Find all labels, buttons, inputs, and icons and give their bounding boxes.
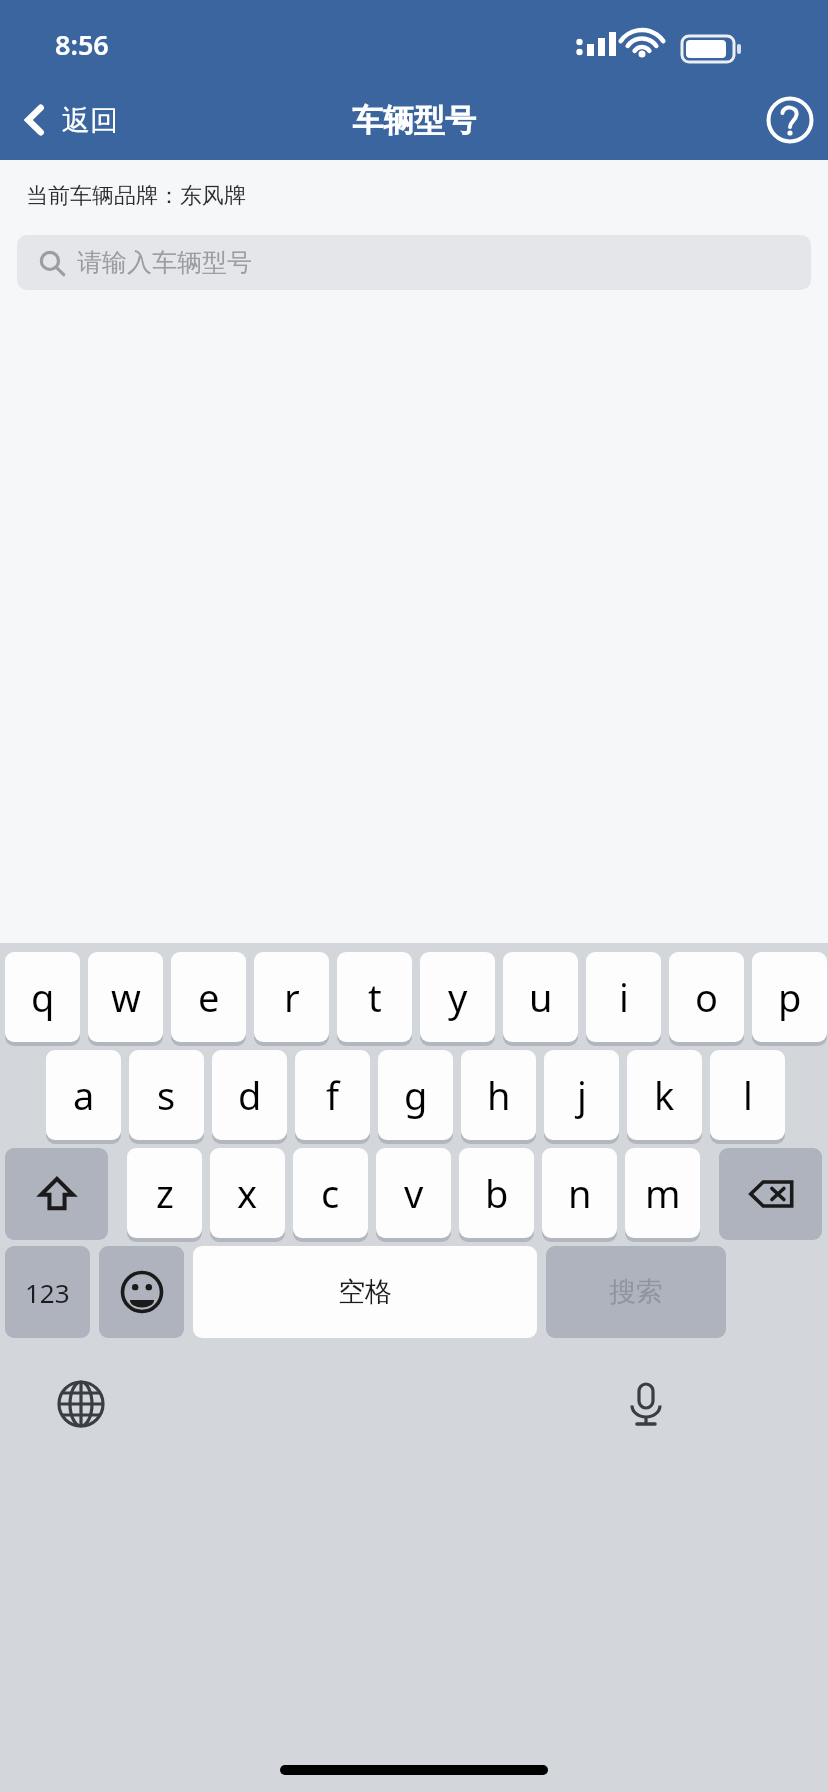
button[interactable]: h [461, 1050, 536, 1142]
button[interactable]: Help [752, 82, 828, 158]
staticText: v [404, 1167, 424, 1219]
staticText: 车辆型号 [0, 101, 828, 140]
staticText: t [368, 971, 382, 1023]
button[interactable]: a [46, 1050, 121, 1142]
staticText: 8:56 [55, 26, 109, 63]
staticText: 返回 [62, 103, 118, 138]
staticText: r [284, 971, 300, 1023]
staticText: z [156, 1167, 174, 1219]
button[interactable]: 空格 [193, 1246, 537, 1338]
button[interactable]: j [544, 1050, 619, 1142]
button[interactable]: i [586, 952, 661, 1044]
staticText: 123 [25, 1275, 70, 1310]
staticText: 请输入车辆型号 [77, 247, 252, 278]
button[interactable]: t [337, 952, 412, 1044]
button[interactable]: r [254, 952, 329, 1044]
button[interactable]: y [420, 952, 495, 1044]
staticText: a [73, 1069, 95, 1121]
staticText: g [404, 1069, 428, 1121]
button[interactable]: p [752, 952, 827, 1044]
staticText: s [157, 1069, 176, 1121]
staticText: w [111, 971, 141, 1023]
staticText: m [645, 1167, 681, 1219]
button[interactable]: x [210, 1148, 285, 1240]
staticText: 空格 [338, 1275, 392, 1309]
button[interactable]: e [171, 952, 246, 1044]
button[interactable]: f [295, 1050, 370, 1142]
button[interactable]: Key [99, 1246, 184, 1338]
button[interactable]: 搜索 [546, 1246, 726, 1338]
staticText: o [695, 971, 718, 1023]
button[interactable]: m [625, 1148, 700, 1240]
staticText: q [31, 971, 55, 1023]
staticText: k [654, 1069, 675, 1121]
button[interactable]: 返回 [0, 85, 132, 155]
button[interactable]: Key [5, 1246, 90, 1338]
staticText: 搜索 [609, 1275, 663, 1309]
staticText: h [487, 1069, 511, 1121]
button[interactable]: Voice input [610, 1368, 682, 1440]
button[interactable]: n [542, 1148, 617, 1240]
button[interactable]: s [129, 1050, 204, 1142]
button[interactable]: k [627, 1050, 702, 1142]
button[interactable]: Key [5, 1148, 108, 1240]
staticText: n [568, 1167, 592, 1219]
button[interactable]: Switch keyboard language [45, 1368, 117, 1440]
button[interactable]: d [212, 1050, 287, 1142]
button[interactable]: l [710, 1050, 785, 1142]
button[interactable]: g [378, 1050, 453, 1142]
staticText: u [529, 971, 553, 1023]
button[interactable]: c [293, 1148, 368, 1240]
staticText: j [577, 1069, 587, 1121]
button[interactable]: q [5, 952, 80, 1044]
staticText: y [448, 971, 468, 1023]
staticText: c [321, 1167, 340, 1219]
staticText: x [237, 1167, 258, 1219]
staticText: e [198, 971, 220, 1023]
staticText: l [743, 1069, 753, 1121]
button[interactable]: w [88, 952, 163, 1044]
staticText: b [485, 1167, 509, 1219]
staticText: f [326, 1069, 340, 1121]
button[interactable]: b [459, 1148, 534, 1240]
button[interactable]: o [669, 952, 744, 1044]
button[interactable]: 请输入车辆型号 [17, 235, 811, 290]
button[interactable]: Key [719, 1148, 822, 1240]
button[interactable]: v [376, 1148, 451, 1240]
button[interactable]: u [503, 952, 578, 1044]
staticText: i [619, 971, 629, 1023]
staticText: d [238, 1069, 262, 1121]
button[interactable]: z [127, 1148, 202, 1240]
staticText: 当前车辆品牌：东风牌 [26, 182, 246, 210]
staticText: p [778, 971, 802, 1023]
